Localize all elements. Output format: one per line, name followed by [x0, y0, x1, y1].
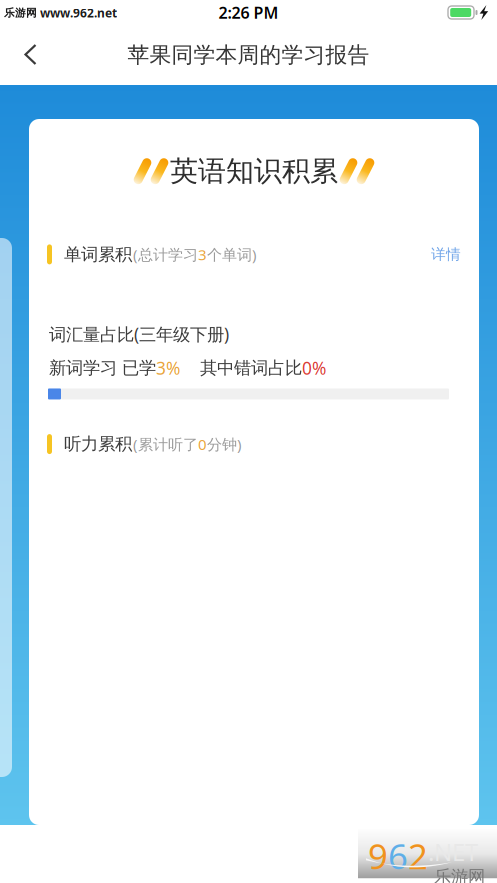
staticText: 详情	[431, 245, 461, 263]
staticText: 新词学习 已学	[49, 357, 156, 379]
staticText: www.962.net	[37, 5, 117, 21]
staticText: 0	[198, 434, 207, 454]
button[interactable]: 详情	[423, 239, 469, 269]
staticText: 3%	[156, 356, 180, 379]
staticText: 分钟)	[207, 434, 242, 454]
button[interactable]: Back	[0, 28, 62, 85]
staticText: 苹果同学本周的学习报告	[127, 41, 369, 69]
staticText: (累计听了	[133, 434, 198, 454]
staticText: 英语知识积累	[170, 154, 338, 188]
staticText: (总计学习	[133, 244, 198, 265]
staticText: 单词累积	[64, 244, 132, 265]
staticText: 2	[408, 832, 428, 879]
staticText: 2:26 PM	[218, 2, 278, 23]
staticText: .NET	[428, 835, 478, 868]
staticText: 个单词)	[207, 244, 257, 265]
staticText: 听力累积	[64, 433, 132, 455]
staticText: 乐游网	[4, 6, 37, 19]
staticText: 乐游网	[434, 866, 485, 883]
staticText: 其中错词占比	[180, 357, 302, 379]
staticText: 6	[388, 832, 408, 879]
staticText: 0%	[302, 356, 326, 379]
staticText: 3	[198, 244, 207, 265]
staticText: 9	[368, 832, 388, 879]
staticText: 词汇量占比(三年级下册)	[49, 322, 229, 345]
